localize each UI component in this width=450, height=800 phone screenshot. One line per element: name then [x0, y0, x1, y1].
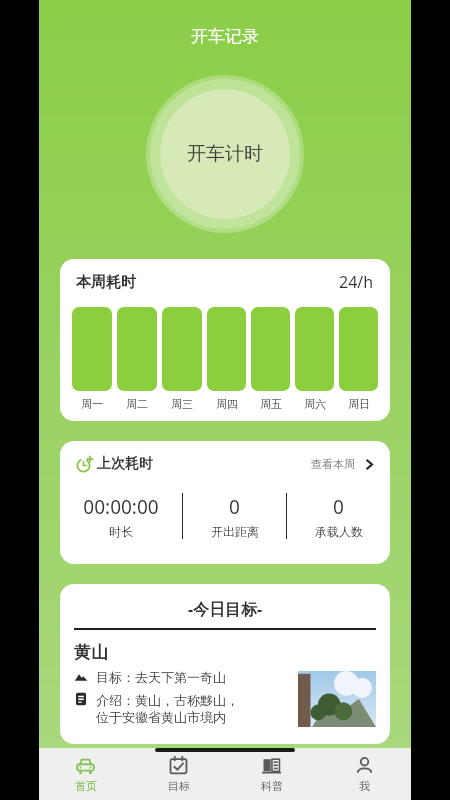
button[interactable]: 科普: [225, 748, 318, 800]
staticText: 周二: [126, 397, 148, 411]
staticText: 开车计时: [187, 142, 263, 166]
button[interactable]: 目标: [132, 748, 225, 800]
staticText: 0: [333, 494, 344, 520]
staticText: 上次耗时: [97, 455, 153, 473]
staticText: 00:00:00: [83, 494, 159, 520]
staticText: 周六: [304, 397, 326, 411]
button[interactable]: 首页: [39, 748, 132, 800]
staticText: 介绍：黄山，古称黟山， 位于安徽省黄山市境内: [96, 692, 239, 726]
staticText: 周一: [81, 397, 103, 411]
staticText: 本周耗时: [76, 273, 136, 292]
button[interactable]: 开车计时: [146, 75, 304, 233]
staticText: 科普: [261, 779, 283, 793]
staticText: 时长: [109, 524, 133, 539]
staticText: 24/h: [339, 271, 374, 293]
staticText: 开出距离: [211, 524, 259, 539]
staticText: 0: [229, 494, 240, 520]
staticText: 首页: [75, 779, 97, 793]
staticText: 查看本周: [311, 457, 355, 471]
staticText: 承载人数: [315, 524, 363, 539]
staticText: -今日目标-: [188, 598, 263, 620]
staticText: 目标：去天下第一奇山: [96, 669, 226, 685]
staticText: 周五: [260, 397, 282, 411]
staticText: 目标: [168, 779, 190, 793]
button[interactable]: -今日目标-: [60, 584, 390, 744]
button[interactable]: 本周耗时: [60, 259, 390, 421]
button[interactable]: 我: [318, 748, 411, 800]
staticText: 周日: [348, 397, 370, 411]
staticText: 周四: [216, 397, 238, 411]
staticText: 我: [359, 779, 370, 793]
button[interactable]: 查看本周: [311, 457, 376, 471]
staticText: 黄山: [74, 642, 108, 663]
staticText: 开车记录: [191, 26, 259, 47]
staticText: 周三: [171, 397, 193, 411]
